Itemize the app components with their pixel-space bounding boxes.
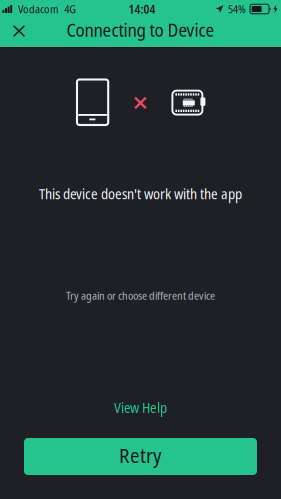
staticText: Try again or choose different device [66,288,215,303]
staticText: View Help [114,398,167,417]
staticText: 54% [228,2,246,16]
staticText: Vodacom [18,1,58,17]
button[interactable]: Retry [24,438,257,475]
button[interactable]: View Help [104,395,177,420]
staticText: 14:04 [128,1,155,17]
staticText: Connecting to Device [66,17,214,42]
staticText: Retry [119,441,162,469]
button[interactable]: Close [0,19,38,46]
staticText: 4G [64,1,76,17]
staticText: This device doesn't work with the app [39,184,242,203]
